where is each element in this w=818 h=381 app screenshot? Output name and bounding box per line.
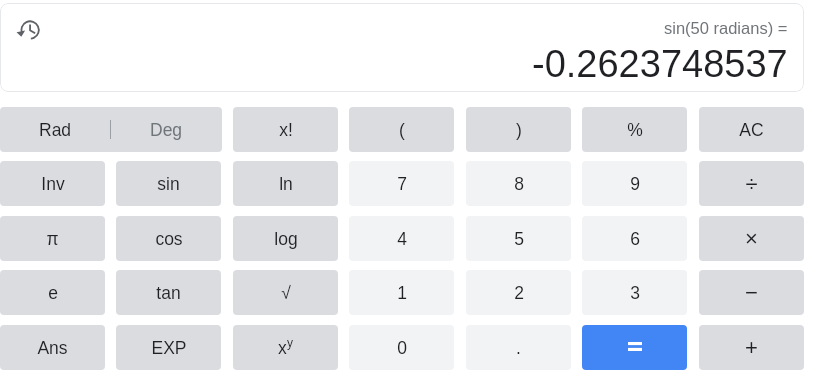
staticText: x <box>278 338 287 358</box>
button[interactable]: % <box>582 107 687 152</box>
staticText: Inv <box>41 174 65 194</box>
button[interactable]: 2 <box>466 270 571 315</box>
button[interactable]: ( <box>349 107 454 152</box>
staticText: × <box>745 226 758 251</box>
staticText: − <box>745 280 758 305</box>
staticText: 2 <box>514 283 524 303</box>
button[interactable]: π <box>0 216 105 261</box>
staticText: Rad <box>39 120 72 140</box>
button[interactable]: EXP <box>116 325 221 370</box>
button[interactable]: 6 <box>582 216 687 261</box>
button[interactable]: 1 <box>349 270 454 315</box>
button[interactable]: 9 <box>582 161 687 206</box>
staticText: AC <box>739 120 764 140</box>
button[interactable]: 0 <box>349 325 454 370</box>
button[interactable]: Rad <box>0 107 110 152</box>
button[interactable]: − <box>699 270 804 315</box>
staticText: log <box>274 229 298 249</box>
button[interactable]: ÷ <box>699 161 804 206</box>
button[interactable]: 5 <box>466 216 571 261</box>
staticText: π <box>46 229 59 249</box>
button[interactable]: Inv <box>0 161 105 206</box>
staticText: EXP <box>151 338 187 358</box>
button[interactable]: AC <box>699 107 804 152</box>
staticText: sin(50 radians) = <box>664 19 788 37</box>
staticText: sin <box>157 174 180 194</box>
staticText: ( <box>399 120 405 140</box>
staticText: 9 <box>630 174 640 194</box>
staticText: 4 <box>397 229 407 249</box>
button[interactable]: e <box>0 270 105 315</box>
button[interactable]: . <box>466 325 571 370</box>
button[interactable]: √ <box>233 270 338 315</box>
button[interactable]: 7 <box>349 161 454 206</box>
button[interactable]: cos <box>116 216 221 261</box>
button[interactable]: × <box>699 216 804 261</box>
staticText: Ans <box>37 338 68 358</box>
staticText: ÷ <box>745 171 758 196</box>
staticText: tan <box>156 283 181 303</box>
button[interactable]: 3 <box>582 270 687 315</box>
staticText: ln <box>279 174 293 194</box>
staticText: . <box>516 338 521 358</box>
button[interactable]: Ans <box>0 325 105 370</box>
staticText: Deg <box>150 120 183 140</box>
button[interactable]: x! <box>233 107 338 152</box>
staticText: y <box>287 336 293 349</box>
staticText: 3 <box>630 283 640 303</box>
staticText: ) <box>516 120 522 140</box>
button[interactable]: + <box>699 325 804 370</box>
staticText: + <box>745 335 758 360</box>
staticText: 5 <box>514 229 524 249</box>
button[interactable]: History <box>12 14 44 46</box>
staticText: 7 <box>397 174 407 194</box>
staticText: % <box>627 120 643 140</box>
staticText: 8 <box>514 174 524 194</box>
button[interactable]: ) <box>466 107 571 152</box>
staticText: √ <box>281 283 291 303</box>
staticText: e <box>48 283 58 303</box>
button[interactable]: sin <box>116 161 221 206</box>
staticText: cos <box>155 229 183 249</box>
button[interactable]: ln <box>233 161 338 206</box>
staticText: 6 <box>630 229 640 249</box>
staticText: x! <box>279 120 293 140</box>
button[interactable]: 8 <box>466 161 571 206</box>
button[interactable]: x to the power of y <box>233 325 338 370</box>
staticText: 0 <box>397 338 407 358</box>
button[interactable]: Equals <box>582 325 687 370</box>
button[interactable]: 4 <box>349 216 454 261</box>
button[interactable]: log <box>233 216 338 261</box>
staticText: -0.2623748537 <box>532 43 788 85</box>
button[interactable]: tan <box>116 270 221 315</box>
staticText: 1 <box>397 283 407 303</box>
button[interactable]: Deg <box>111 107 222 152</box>
